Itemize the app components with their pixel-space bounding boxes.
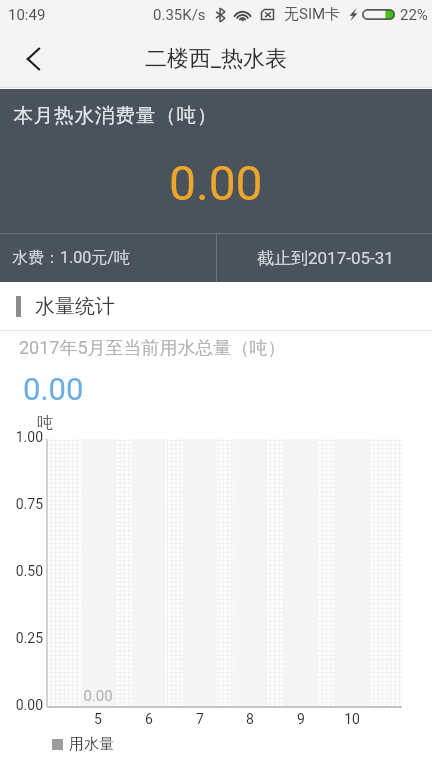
staticText: 10:49 <box>8 6 46 24</box>
staticText: 6 <box>129 711 169 727</box>
staticText: 吨 <box>37 413 53 433</box>
staticText: 8 <box>230 711 270 727</box>
staticText: 水费：1.00元/吨 <box>12 248 130 268</box>
staticText: 10 <box>332 711 372 727</box>
staticText: 0.25 <box>0 630 43 646</box>
staticText: 9 <box>281 711 321 727</box>
button[interactable]: Back <box>0 29 66 88</box>
staticText: 0.00 <box>169 155 263 211</box>
staticText: 1.00 <box>0 429 43 445</box>
staticText: 0.00 <box>23 371 84 407</box>
staticText: 无SIM卡 <box>284 5 341 24</box>
staticText: 22% <box>400 6 428 24</box>
staticText: 0.50 <box>0 563 43 579</box>
staticText: 本月热水消费量（吨） <box>13 103 217 128</box>
staticText: 水量统计 <box>35 294 115 319</box>
staticText: 2017年5月至当前用水总量（吨） <box>19 337 286 360</box>
staticText: 用水量 <box>69 735 114 754</box>
staticText: 二楼西_热水表 <box>145 45 287 73</box>
staticText: 截止到2017-05-31 <box>257 248 394 269</box>
staticText: 5 <box>78 711 118 727</box>
staticText: 0.00 <box>77 687 119 705</box>
staticText: 0.35K/s <box>153 6 206 24</box>
staticText: 7 <box>180 711 220 727</box>
staticText: 0.75 <box>0 496 43 512</box>
staticText: 0.00 <box>0 697 43 713</box>
